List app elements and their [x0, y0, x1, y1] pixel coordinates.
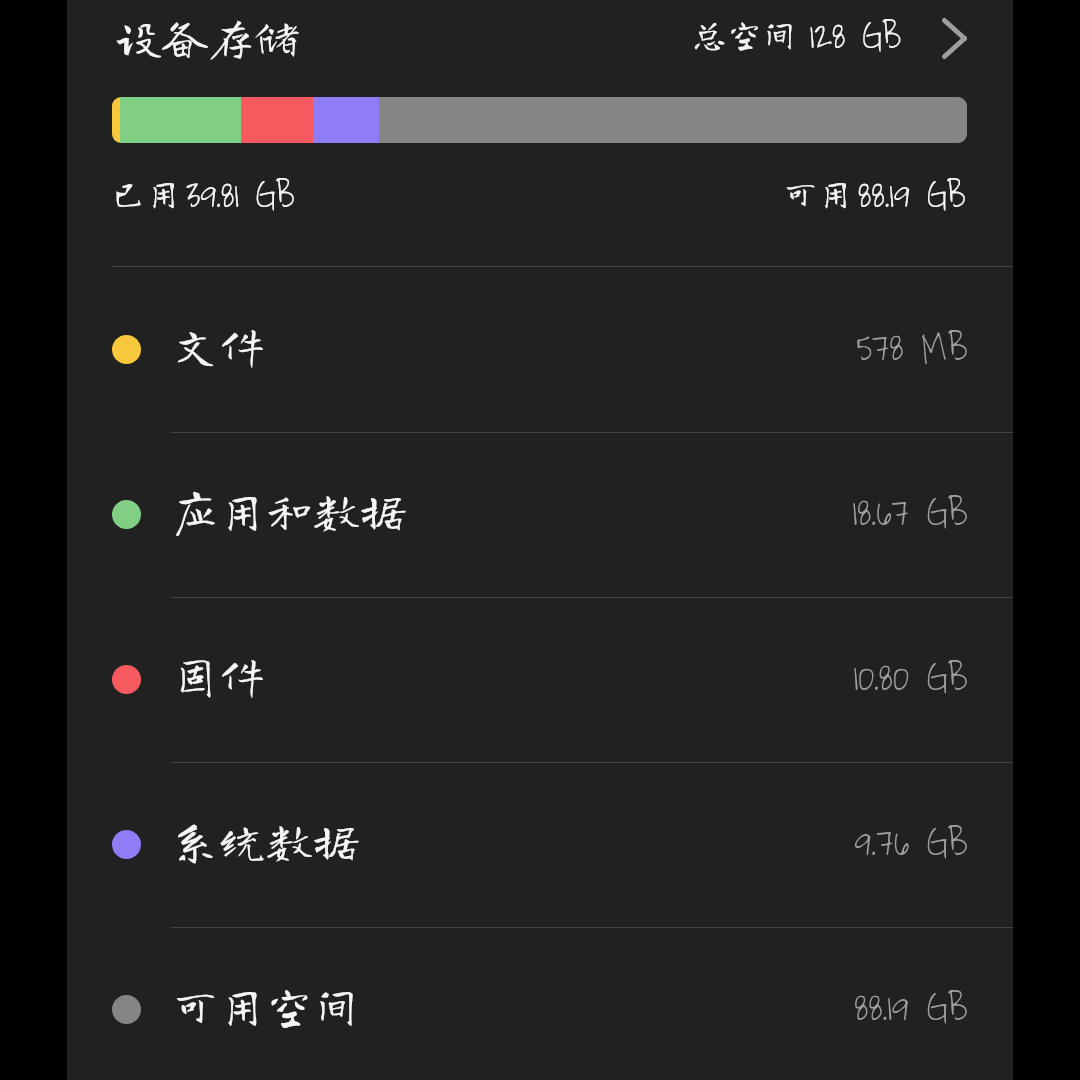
staticText: 已用 [111, 175, 182, 210]
staticText: 128 GB [810, 5, 902, 68]
staticText: 39.81 GB [186, 164, 295, 227]
button[interactable]: 设备存储 [67, 0, 1013, 82]
staticText: 10.80 GB [568, 645, 968, 711]
button[interactable] [67, 597, 1013, 762]
other: Open device storage details [939, 15, 969, 45]
button[interactable] [67, 927, 1013, 1080]
staticText: 文件 [172, 322, 266, 369]
staticText: 固件 [172, 652, 266, 699]
staticText: 578 MB [568, 315, 968, 381]
staticText: 应用和数据 [172, 487, 407, 534]
button[interactable] [67, 762, 1013, 927]
staticText: 可用空间 [172, 982, 360, 1029]
staticText: 设备存储 [116, 14, 300, 60]
staticText: 系统数据 [172, 817, 360, 864]
staticText: 9.76 GB [568, 810, 968, 876]
staticText: 总空间 [692, 16, 798, 51]
button[interactable] [67, 267, 1013, 432]
staticText: 88.19 GB [858, 164, 967, 227]
staticText: 88.19 GB [568, 975, 968, 1041]
staticText: 可用 [783, 175, 854, 210]
staticText: 18.67 GB [568, 480, 968, 546]
button[interactable] [67, 432, 1013, 597]
